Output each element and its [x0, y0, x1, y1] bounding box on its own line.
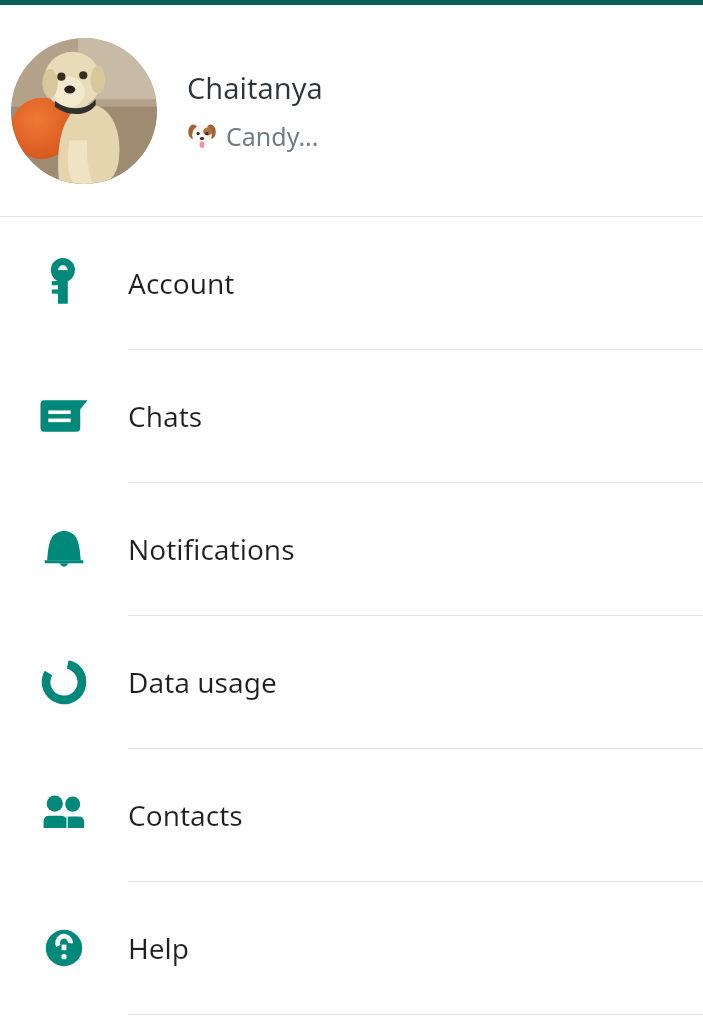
other: Contacts [36, 787, 92, 843]
other: Help [36, 920, 92, 976]
other: Notifications [36, 521, 92, 577]
staticText: Account [128, 264, 235, 302]
button[interactable]: Notifications [0, 483, 703, 616]
button[interactable]: Account [0, 217, 703, 350]
staticText: Candy... [226, 119, 319, 153]
staticText: Chaitanya [187, 68, 323, 107]
staticText: Help [128, 929, 189, 967]
button[interactable]: Help [0, 882, 703, 1015]
staticText: Chats [128, 397, 203, 435]
button[interactable]: Contacts [0, 749, 703, 882]
staticText: Notifications [128, 530, 295, 568]
staticText: Data usage [128, 663, 277, 701]
button[interactable]: Data usage [0, 616, 703, 749]
staticText: Contacts [128, 796, 243, 834]
other: Chats [36, 388, 92, 444]
other: Account [36, 255, 92, 311]
button[interactable]: Chaitanya [0, 5, 703, 216]
button[interactable]: Chats [0, 350, 703, 483]
other: Data usage [36, 654, 92, 710]
